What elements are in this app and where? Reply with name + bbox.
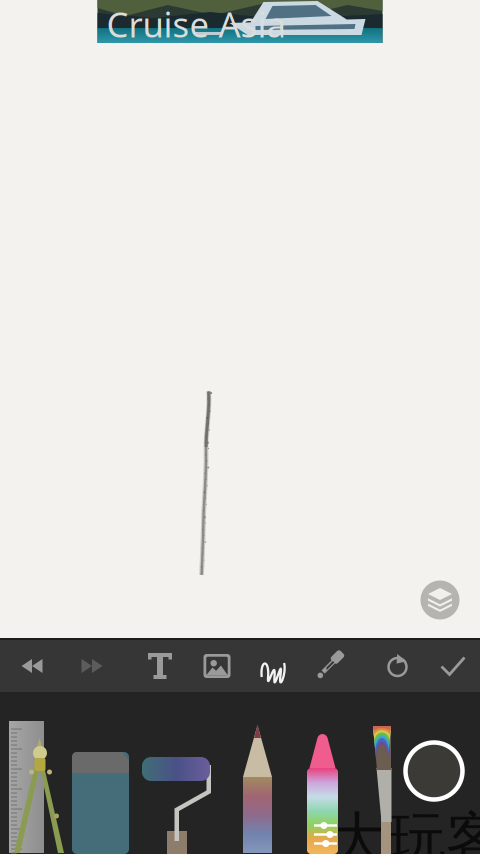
- button[interactable]: Pencil: [243, 725, 272, 853]
- button[interactable]: Current color: [401, 738, 467, 804]
- staticText: 大玩客: [328, 804, 480, 854]
- button[interactable]: Insert photo: [194, 640, 240, 692]
- staticText: Cruise Asia: [106, 1, 285, 47]
- button[interactable]: Layers: [415, 575, 465, 625]
- button[interactable]: Undo: [9, 640, 55, 692]
- button[interactable]: Color picker: [307, 640, 353, 692]
- button[interactable]: Redo: [69, 640, 115, 692]
- button[interactable]: Text: [137, 640, 183, 692]
- button[interactable]: Cruise Asia advertisement: [97, 0, 382, 44]
- button[interactable]: Done: [430, 640, 476, 692]
- button[interactable]: Brush: [367, 726, 397, 854]
- button[interactable]: Eraser: [72, 752, 129, 854]
- button[interactable]: Marker: [307, 734, 338, 854]
- button[interactable]: Rotate: [375, 640, 421, 692]
- button[interactable]: Draw: [251, 640, 297, 692]
- button[interactable]: Ruler and compass: [9, 721, 71, 853]
- button[interactable]: Paint roller: [142, 757, 212, 854]
